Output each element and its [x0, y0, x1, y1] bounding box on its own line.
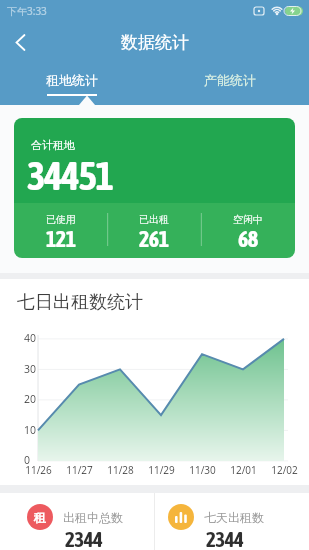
- staticText: 30: [24, 362, 37, 376]
- staticText: 2344: [206, 527, 244, 547]
- button[interactable]: 租地统计: [0, 56, 154, 105]
- button[interactable]: 已使用: [14, 213, 107, 258]
- staticText: 0: [24, 453, 31, 467]
- button[interactable]: 已出租: [107, 213, 201, 258]
- staticText: 20: [24, 392, 37, 406]
- staticText: 40: [24, 331, 37, 345]
- staticText: 数据统计: [121, 32, 189, 53]
- staticText: 租: [34, 510, 46, 525]
- staticText: 68: [238, 226, 258, 251]
- staticText: 11/30: [182, 463, 223, 477]
- staticText: 11/28: [100, 463, 141, 477]
- button[interactable]: [8, 30, 32, 54]
- staticText: 合计租地: [31, 138, 75, 152]
- staticText: 12/01: [223, 463, 264, 477]
- staticText: 11/29: [141, 463, 182, 477]
- staticText: 产能统计: [204, 72, 256, 88]
- staticText: 11/26: [18, 463, 59, 477]
- staticText: 空闲中: [233, 213, 263, 226]
- staticText: 七天出租数: [204, 510, 264, 525]
- staticText: 34451: [27, 154, 113, 199]
- button[interactable]: 合计租地: [14, 118, 295, 258]
- staticText: 121: [46, 226, 76, 251]
- staticText: 11/27: [59, 463, 100, 477]
- staticText: 10: [24, 423, 37, 437]
- staticText: 出租中总数: [63, 510, 123, 525]
- button[interactable]: 七天出租数: [155, 493, 309, 550]
- button[interactable]: 租: [0, 493, 154, 550]
- staticText: 已使用: [46, 213, 76, 226]
- button[interactable]: 产能统计: [154, 56, 309, 105]
- button[interactable]: 空闲中: [201, 213, 295, 258]
- staticText: 261: [139, 226, 169, 251]
- staticText: 七日出租数统计: [17, 291, 143, 314]
- staticText: 已出租: [139, 213, 169, 226]
- staticText: 12/02: [264, 463, 305, 477]
- staticText: 2344: [65, 527, 103, 547]
- staticText: 下午3:33: [7, 4, 47, 18]
- staticText: 租地统计: [46, 72, 98, 88]
